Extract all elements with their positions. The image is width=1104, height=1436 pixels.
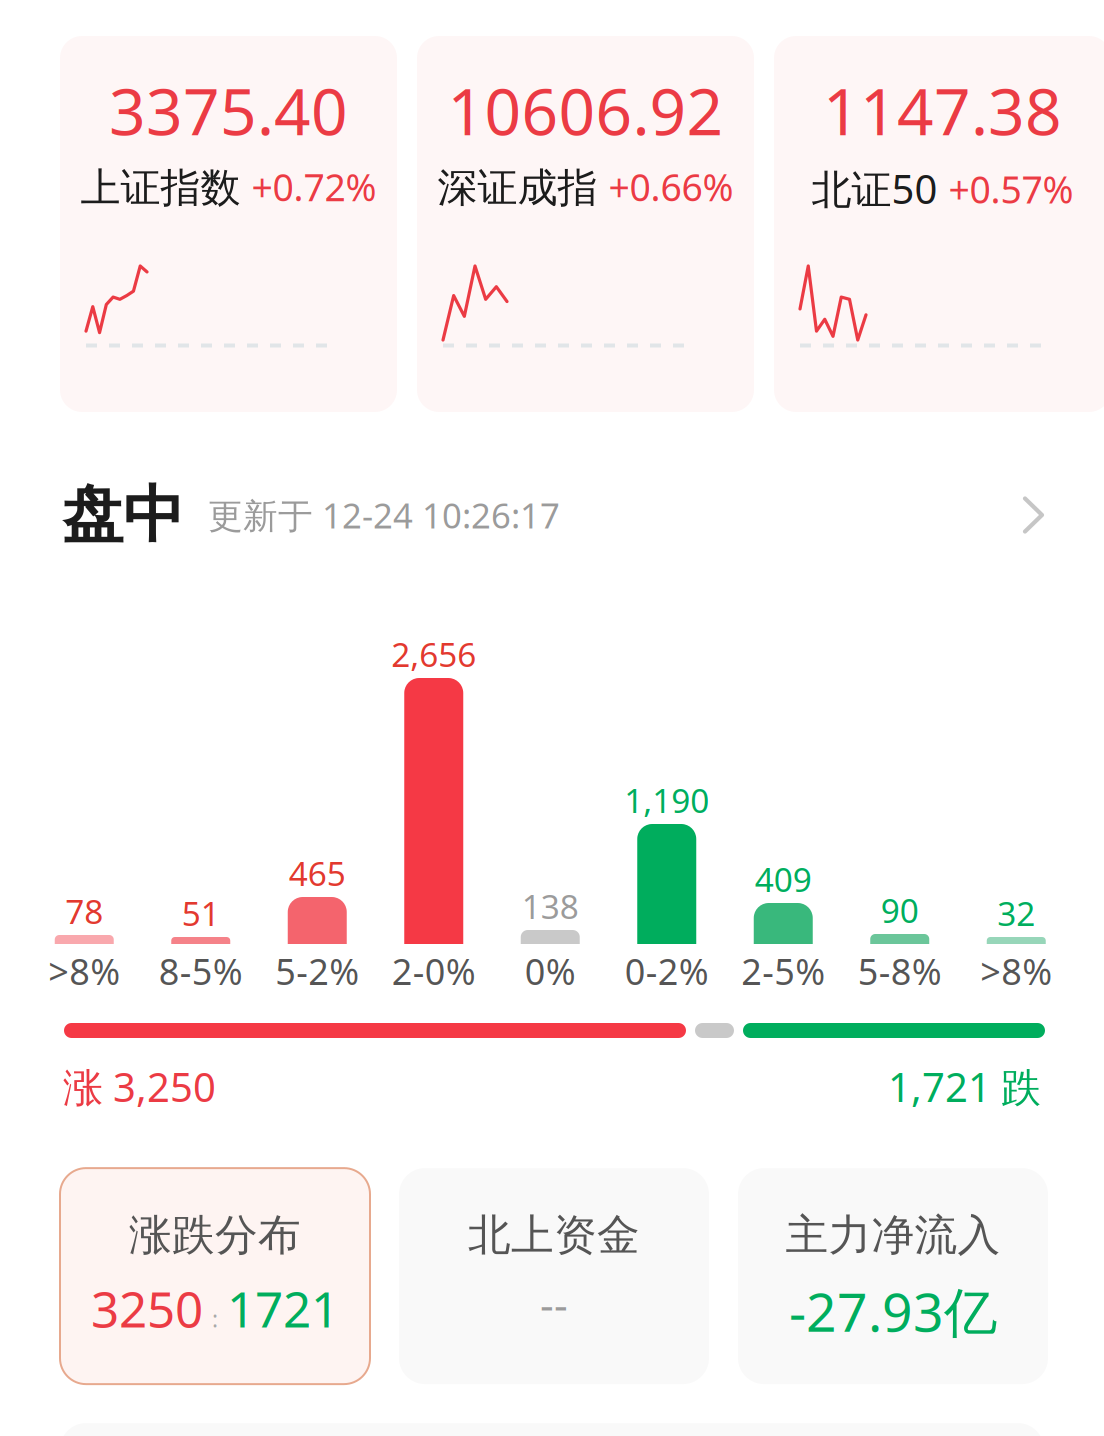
staticText: 90: [881, 888, 919, 932]
staticText: 1147.38: [823, 68, 1062, 153]
staticText: -27.93亿: [789, 1275, 997, 1346]
staticText: --: [540, 1275, 568, 1332]
staticText: 上证指数: [80, 163, 240, 212]
staticText: 主力净流入: [785, 1209, 1000, 1261]
button[interactable]: 主力净流入: [738, 1168, 1048, 1384]
staticText: >8%: [980, 947, 1052, 995]
staticText: 更新于 12-24 10:26:17: [208, 492, 560, 538]
staticText: 0%: [525, 947, 576, 995]
staticText: 138: [522, 884, 579, 928]
staticText: 10606.92: [447, 68, 723, 153]
button[interactable]: 3375.40: [60, 36, 397, 412]
staticText: 2-5%: [741, 947, 825, 995]
staticText: 5-2%: [275, 947, 359, 995]
staticText: 5-8%: [858, 947, 942, 995]
button[interactable]: 盘中: [0, 412, 1104, 618]
staticText: +0.66%: [608, 162, 733, 212]
staticText: +0.57%: [948, 164, 1073, 214]
staticText: 涨 3,250: [63, 1060, 216, 1113]
staticText: 465: [289, 851, 346, 895]
staticText: 51: [182, 891, 220, 935]
staticText: >8%: [48, 947, 120, 995]
button[interactable]: 涨跌分布: [60, 1168, 370, 1384]
staticText: +0.72%: [251, 162, 376, 212]
staticText: 78: [65, 889, 103, 933]
staticText: 1721: [227, 1275, 339, 1341]
staticText: 409: [755, 857, 812, 901]
button[interactable]: 北上资金: [399, 1168, 709, 1384]
staticText: 1,190: [624, 778, 709, 822]
staticText: 北证50: [811, 162, 937, 215]
staticText: 深证成指: [437, 163, 597, 212]
staticText: 2-0%: [392, 947, 476, 995]
staticText: 1,721 跌: [888, 1060, 1041, 1113]
staticText: 32: [997, 891, 1035, 935]
staticText: 涨跌分布: [129, 1209, 301, 1261]
staticText: 3250: [91, 1275, 203, 1341]
staticText: 2,656: [391, 632, 476, 676]
button[interactable]: 10606.92: [417, 36, 754, 412]
button[interactable]: 1147.38: [774, 36, 1104, 412]
staticText: :: [212, 1304, 218, 1334]
staticText: 盘中: [62, 477, 184, 553]
staticText: 0-2%: [625, 947, 709, 995]
staticText: 8-5%: [159, 947, 243, 995]
staticText: 3375.40: [109, 68, 348, 153]
staticText: 北上资金: [468, 1209, 640, 1261]
